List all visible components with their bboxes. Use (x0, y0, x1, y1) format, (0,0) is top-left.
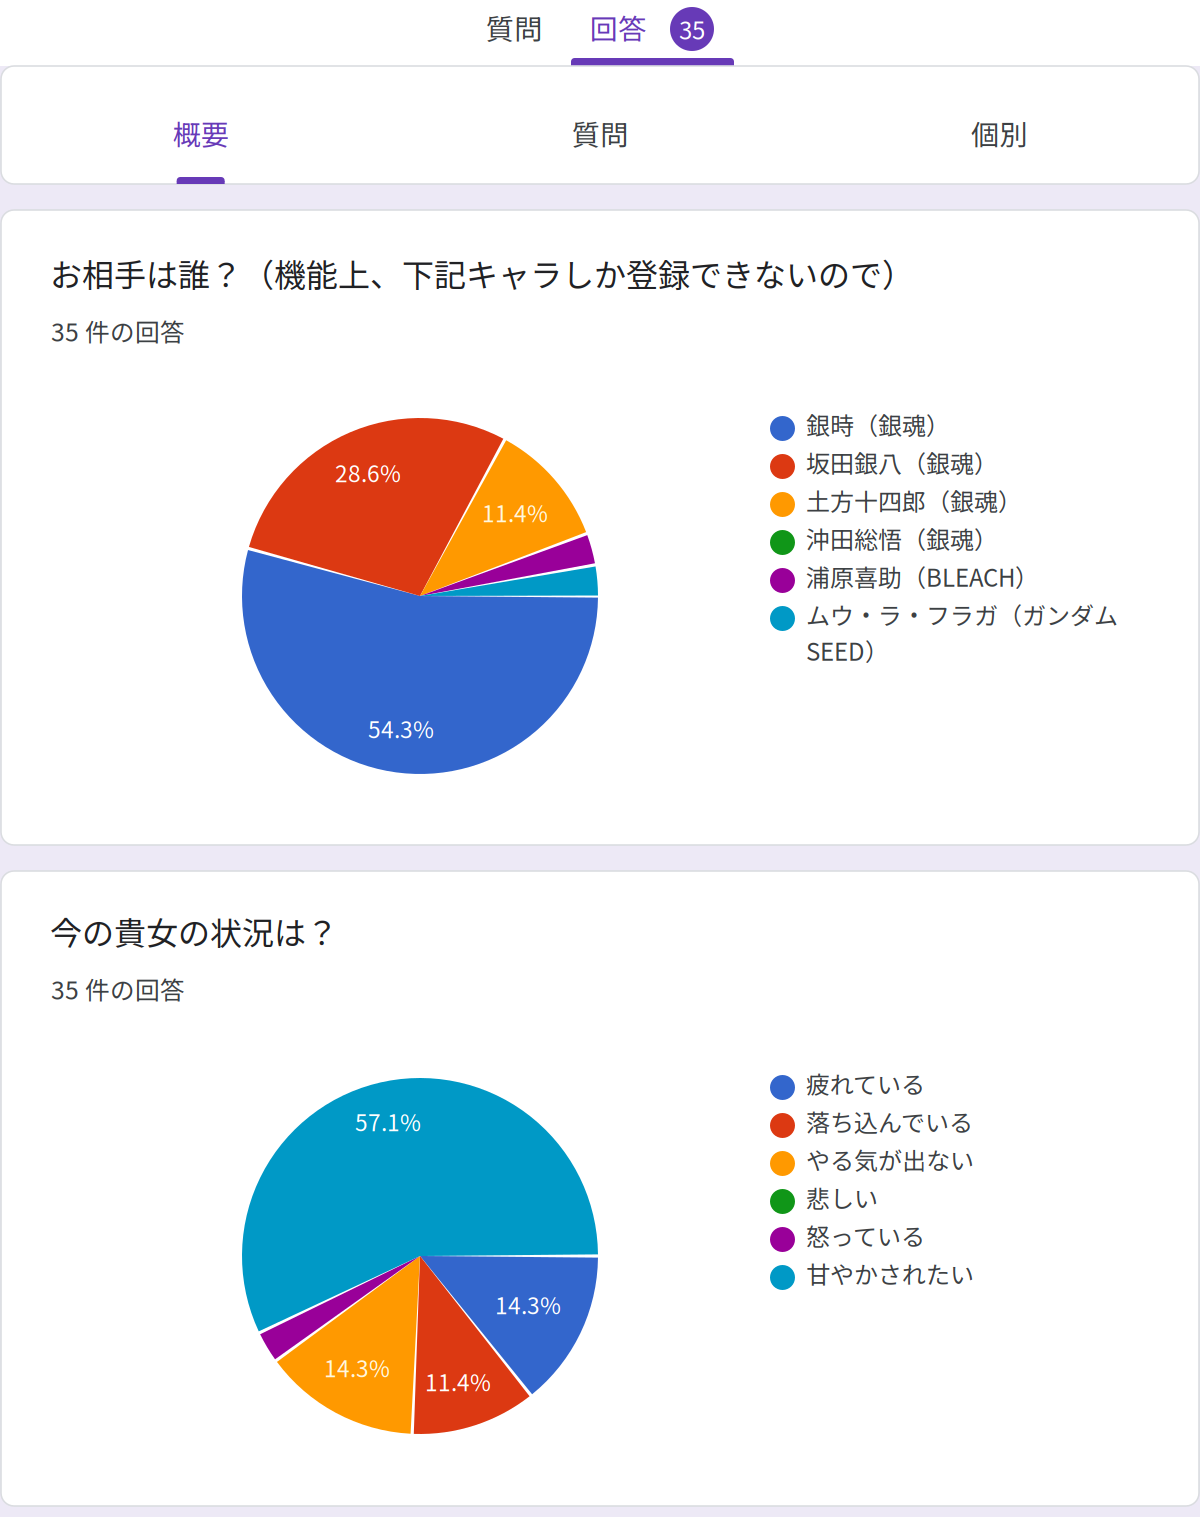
staticText: 11.4% (482, 496, 548, 529)
staticText: 28.6% (335, 456, 401, 489)
staticText: 57.1% (355, 1105, 421, 1138)
staticText: 35 件の回答 (51, 313, 185, 349)
staticText: 土方十四郎（銀魂） (806, 483, 1022, 518)
staticText: 坂田銀八（銀魂） (806, 445, 998, 480)
staticText: お相手は誰？（機能上、下記キャラしか登録できないので） (50, 250, 914, 296)
staticText: ムウ・ラ・フラガ（ガンダム (806, 597, 1118, 632)
button[interactable]: 個別 (800, 66, 1199, 184)
staticText: 概要 (173, 113, 229, 153)
staticText: 疲れている (806, 1066, 925, 1101)
staticText: 銀時（銀魂） (806, 407, 950, 442)
staticText: 落ち込んでいる (806, 1104, 973, 1139)
staticText: やる気が出ない (806, 1142, 974, 1177)
staticText: 35 件の回答 (51, 971, 185, 1007)
staticText: 35 (679, 12, 705, 46)
staticText: 個別 (971, 113, 1027, 153)
staticText: 質問 (572, 113, 628, 153)
staticText: 怒っている (806, 1218, 925, 1253)
button[interactable]: 概要 (1, 66, 400, 184)
staticText: 14.3% (495, 1288, 561, 1321)
staticText: 11.4% (425, 1365, 491, 1398)
staticText: 14.3% (324, 1351, 390, 1384)
staticText: 沖田総悟（銀魂） (806, 521, 998, 556)
staticText: 甘やかされたい (806, 1256, 974, 1291)
staticText: SEED） (806, 633, 889, 668)
staticText: 回答 (590, 7, 646, 47)
button[interactable]: 回答 (571, 0, 734, 66)
staticText: 悲しい (806, 1180, 878, 1215)
staticText: 54.3% (368, 712, 434, 745)
staticText: 質問 (486, 7, 542, 47)
button[interactable]: 質問 (460, 0, 568, 66)
staticText: 今の貴女の状況は？ (50, 908, 338, 954)
staticText: 浦原喜助（BLEACH） (806, 559, 1039, 594)
button[interactable]: 質問 (400, 66, 800, 184)
